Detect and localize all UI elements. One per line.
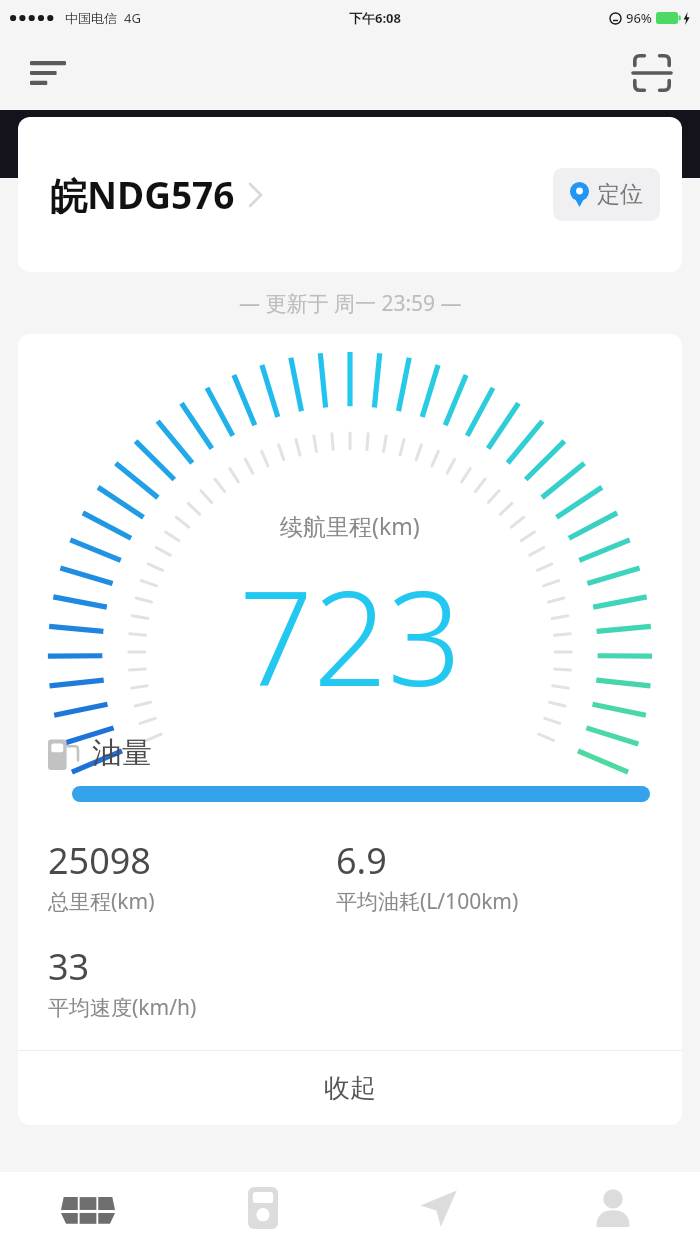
staticText: 中国电信 [65,10,117,26]
button[interactable]: Menu [18,43,78,103]
staticText: 续航里程(km) [280,510,420,541]
button[interactable]: Profile [525,1172,700,1244]
button[interactable]: Remote [175,1172,350,1244]
staticText: 33 [48,942,90,991]
staticText: 96% [626,9,652,27]
staticText: 下午6:08 [349,9,401,27]
staticText: — 更新于 周一 23:59 — [239,289,462,318]
button[interactable]: Scan [622,43,682,103]
button[interactable]: 皖NDG576 [18,117,682,272]
staticText: 4G [124,9,141,27]
staticText: 平均速度(km/h) [48,993,197,1022]
staticText: 皖NDG576 [50,169,235,220]
staticText: 油量 [92,734,152,772]
staticText: 6.9 [336,836,387,885]
staticText: 定位 [597,180,643,209]
button[interactable]: Navigate [350,1172,525,1244]
staticText: 25098 [48,836,151,885]
staticText: 总里程(km) [48,887,155,916]
button[interactable]: 定位 [553,168,660,221]
staticText: 收起 [324,1072,376,1105]
staticText: 723 [239,547,462,724]
staticText: 平均油耗(L/100km) [336,887,519,916]
button[interactable]: Vehicle [0,1172,175,1244]
button[interactable]: 收起 [18,1051,682,1125]
